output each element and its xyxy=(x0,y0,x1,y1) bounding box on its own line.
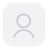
button[interactable]: Profile xyxy=(0,0,48,49)
